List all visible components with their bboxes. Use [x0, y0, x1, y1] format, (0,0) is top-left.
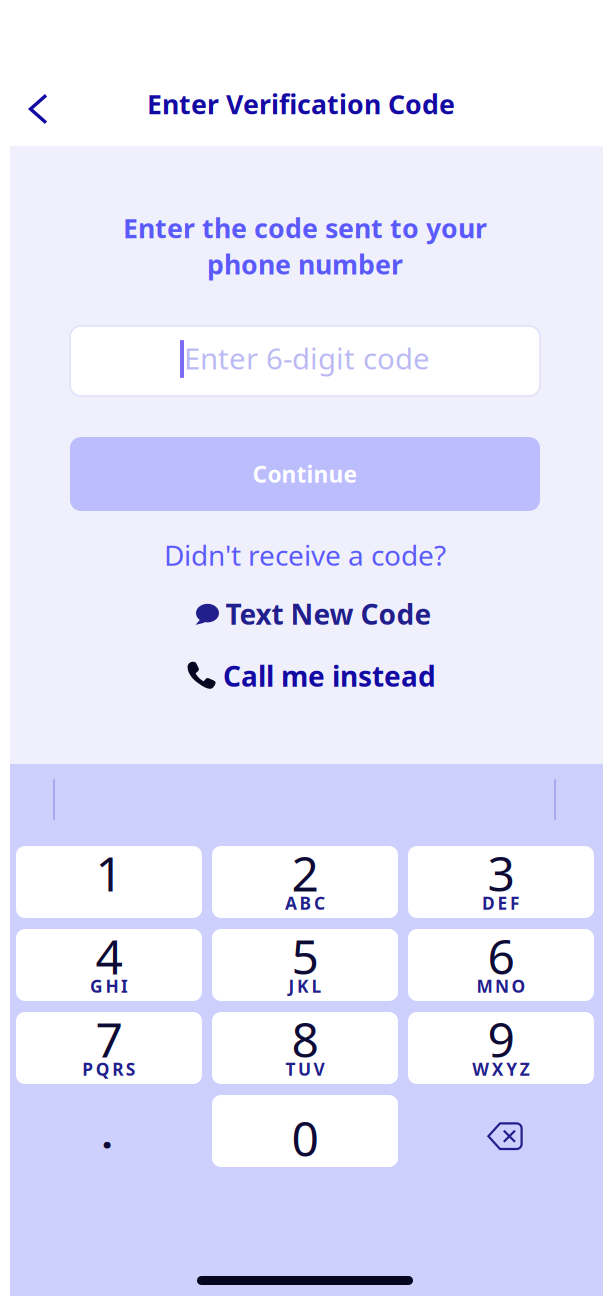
button[interactable]: Text New Code	[8, 592, 610, 636]
button[interactable]: 1	[16, 846, 202, 918]
staticText: 9	[487, 1007, 514, 1071]
staticText: .	[101, 1106, 112, 1159]
staticText: Enter the code sent to your	[123, 210, 487, 245]
staticText: 4	[95, 924, 122, 988]
staticText: Continue	[252, 459, 357, 489]
button[interactable]: Back	[0, 73, 70, 133]
staticText: 2	[291, 841, 318, 905]
staticText: 1	[95, 841, 122, 905]
button[interactable]: 7	[16, 1012, 202, 1084]
button[interactable]: 4	[16, 929, 202, 1001]
staticText: 7	[95, 1007, 122, 1071]
staticText: Enter Verification Code	[147, 86, 455, 122]
staticText: MNO	[476, 974, 525, 997]
button[interactable]: Delete	[408, 1095, 594, 1167]
staticText: ABC	[285, 891, 325, 914]
button[interactable]: 5	[212, 929, 398, 1001]
staticText: DEF	[482, 891, 520, 914]
staticText: JKL	[288, 974, 321, 997]
staticText: Text New Code	[225, 595, 431, 633]
button[interactable]: Continue	[70, 437, 540, 511]
button[interactable]: Call me instead	[6, 654, 610, 698]
staticText: Call me instead	[223, 657, 436, 695]
button[interactable]: 9	[408, 1012, 594, 1084]
staticText: WXYZ	[472, 1057, 530, 1080]
button[interactable]: 6	[408, 929, 594, 1001]
button[interactable]: 0	[212, 1095, 398, 1167]
staticText: TUV	[285, 1057, 324, 1080]
staticText: PQRS	[82, 1057, 136, 1080]
staticText: Enter 6-digit code	[184, 338, 430, 377]
staticText: 8	[291, 1007, 318, 1071]
button[interactable]: 3	[408, 846, 594, 918]
staticText: GHI	[90, 974, 128, 997]
staticText: 0	[291, 1106, 318, 1170]
button[interactable]: 2	[212, 846, 398, 918]
button[interactable]: 8	[212, 1012, 398, 1084]
staticText: 5	[291, 924, 318, 988]
staticText: 6	[487, 924, 514, 988]
button[interactable]: Decimal point	[16, 1095, 202, 1167]
staticText: Didn't receive a code?	[164, 536, 446, 574]
staticText: 3	[487, 841, 514, 905]
staticText: phone number	[207, 246, 403, 282]
